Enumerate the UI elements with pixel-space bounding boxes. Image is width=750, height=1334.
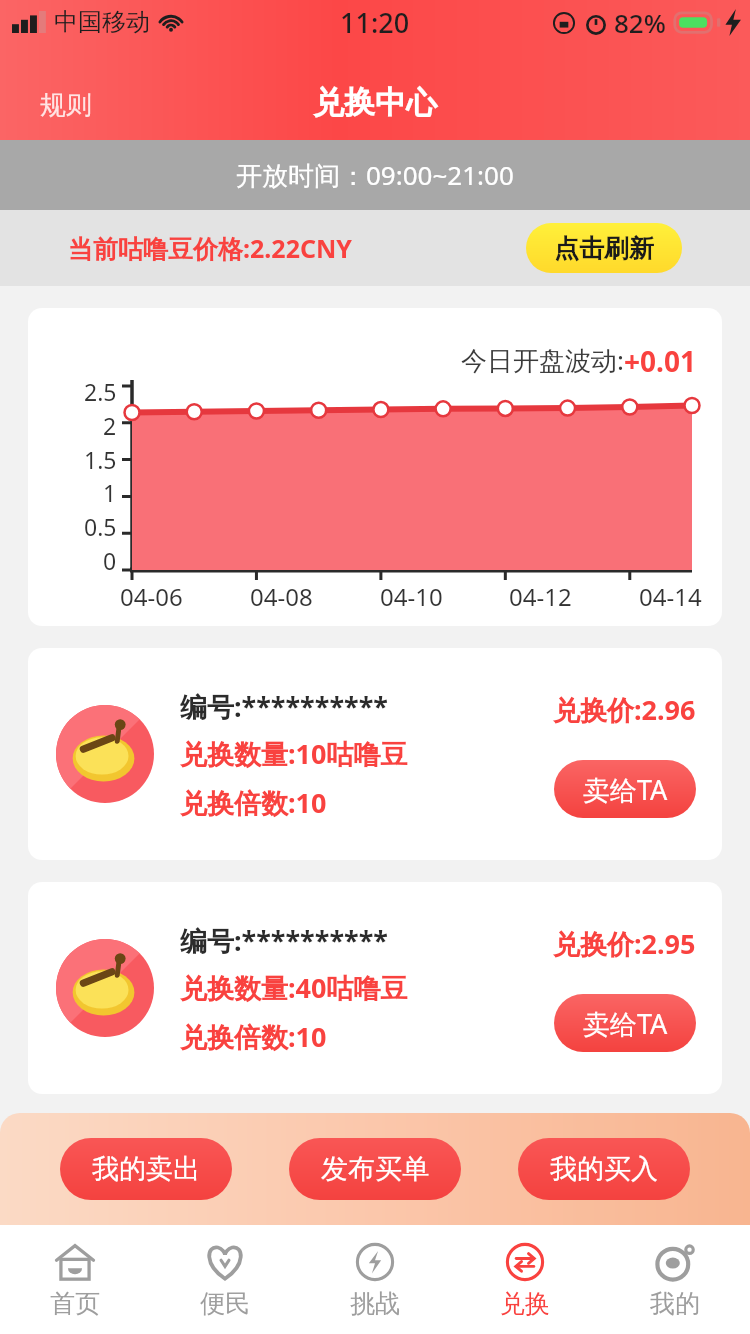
staticText: 兑换数量:10咕噜豆 <box>180 735 408 772</box>
staticText: 编号:********** <box>180 922 388 959</box>
staticText: +0.01 <box>624 342 696 380</box>
staticText: 规则 <box>40 89 92 122</box>
staticText: 首页 <box>50 1288 100 1319</box>
staticText: 点击刷新 <box>554 233 654 264</box>
staticText: 82% <box>614 5 666 40</box>
staticText: 兑换中心 <box>313 83 437 122</box>
button[interactable]: 咕噜豆 <box>28 648 722 860</box>
button[interactable]: 发布买单 <box>289 1138 461 1200</box>
staticText: 兑换价:2.95 <box>553 925 696 962</box>
staticText: 04-10 <box>380 580 443 613</box>
button[interactable]: 我的买入 <box>518 1138 690 1200</box>
button[interactable]: 咕噜豆 <box>28 882 722 1094</box>
staticText: 0.5 <box>84 511 117 542</box>
button[interactable]: 便民 <box>150 1225 300 1334</box>
staticText: 1.5 <box>84 444 117 475</box>
button[interactable]: 规则 <box>26 79 106 132</box>
staticText: 04-14 <box>639 580 702 613</box>
staticText: 卖给TA <box>583 1005 668 1042</box>
staticText: 开放时间：09:00~21:00 <box>236 157 514 193</box>
staticText: 兑换价:2.96 <box>553 691 696 728</box>
button[interactable]: 点击刷新 <box>526 223 682 273</box>
staticText: 便民 <box>200 1288 250 1319</box>
staticText: 我的卖出 <box>92 1152 200 1186</box>
staticText: 04-12 <box>509 580 572 613</box>
button[interactable]: 我的卖出 <box>60 1138 232 1200</box>
button[interactable]: 我的 <box>600 1225 750 1334</box>
staticText: 2.5 <box>84 376 117 407</box>
staticText: 0 <box>103 545 117 576</box>
staticText: 11:20 <box>340 4 410 41</box>
button[interactable]: 卖给TA <box>554 994 696 1052</box>
staticText: 今日开盘波动: <box>461 342 624 378</box>
other: 咕噜豆 <box>56 939 154 1037</box>
staticText: 中国移动 <box>54 7 150 37</box>
staticText: 挑战 <box>350 1288 400 1319</box>
staticText: 兑换倍数:10 <box>180 1018 327 1055</box>
staticText: 2 <box>103 410 117 441</box>
staticText: 我的买入 <box>550 1152 658 1186</box>
staticText: 1 <box>103 477 117 508</box>
staticText: 兑换数量:40咕噜豆 <box>180 969 408 1006</box>
staticText: 04-06 <box>120 580 183 613</box>
staticText: 04-08 <box>250 580 313 613</box>
staticText: 当前咕噜豆价格:2.22CNY <box>68 231 352 265</box>
button[interactable]: 首页 <box>0 1225 150 1334</box>
staticText: 发布买单 <box>321 1152 429 1186</box>
staticText: 卖给TA <box>583 771 668 808</box>
button[interactable]: 挑战 <box>300 1225 450 1334</box>
staticText: 我的 <box>650 1288 700 1319</box>
button[interactable]: 兑换 <box>450 1225 600 1334</box>
button[interactable]: 卖给TA <box>554 760 696 818</box>
staticText: 兑换倍数:10 <box>180 784 327 821</box>
other: 咕噜豆 <box>56 705 154 803</box>
staticText: 兑换 <box>500 1288 550 1319</box>
staticText: 编号:********** <box>180 688 388 725</box>
